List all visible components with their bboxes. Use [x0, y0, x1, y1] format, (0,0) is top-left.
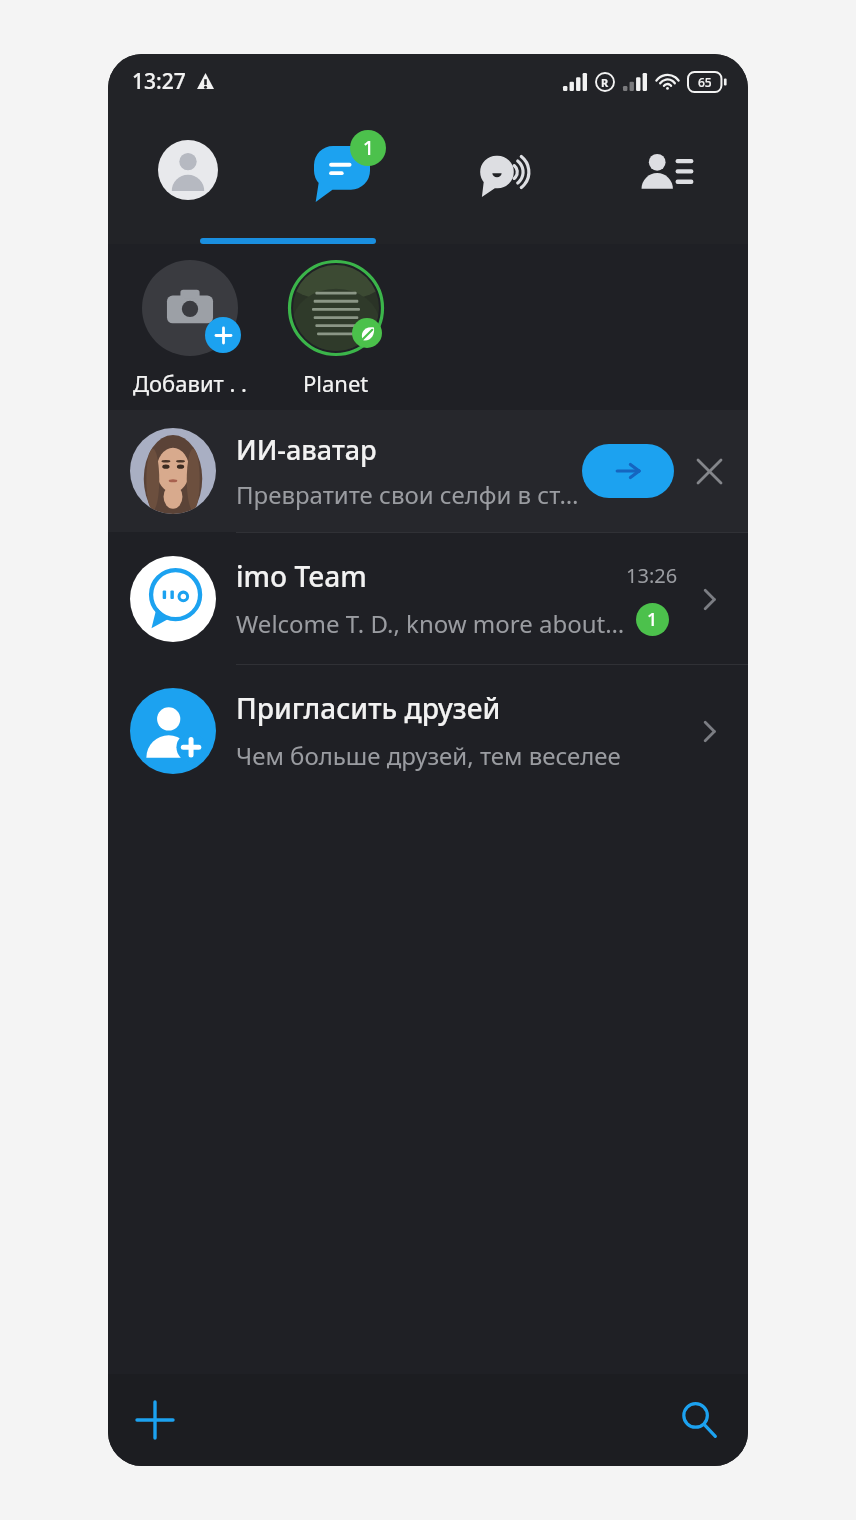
staticText: R [601, 75, 609, 90]
staticText: imo Team [236, 557, 367, 595]
staticText: Planet [303, 368, 369, 398]
staticText: ИИ-аватар [236, 431, 377, 468]
staticText: Чем больше друзей, тем веселее [236, 739, 621, 772]
staticText: Welcome T. D., know more about… [236, 607, 625, 640]
staticText: 65 [698, 74, 712, 90]
button[interactable]: imo Team [108, 533, 748, 664]
staticText: Превратите свои селфи в ст… [236, 478, 579, 511]
button[interactable]: Пригласить друзей [108, 665, 748, 796]
button[interactable]: Search [670, 1391, 728, 1449]
button[interactable]: Open AI avatar [582, 444, 674, 498]
staticText: 13:27 [132, 67, 186, 96]
button[interactable]: Contacts [588, 108, 748, 244]
staticText: 13:26 [626, 562, 678, 589]
button[interactable]: New chat [126, 1391, 184, 1449]
button[interactable]: ИИ-аватар [108, 410, 748, 532]
button[interactable]: Add story [130, 260, 250, 398]
button[interactable]: Dismiss [688, 450, 730, 492]
button[interactable]: Planet story [276, 260, 396, 398]
button[interactable]: Chats [268, 108, 428, 244]
staticText: 1 [647, 607, 658, 632]
button[interactable]: Stories [428, 108, 588, 244]
staticText: 1 [363, 135, 374, 161]
staticText: Пригласить друзей [236, 689, 501, 727]
staticText: Добавит . . [133, 368, 248, 398]
button[interactable]: Profile [108, 108, 268, 244]
